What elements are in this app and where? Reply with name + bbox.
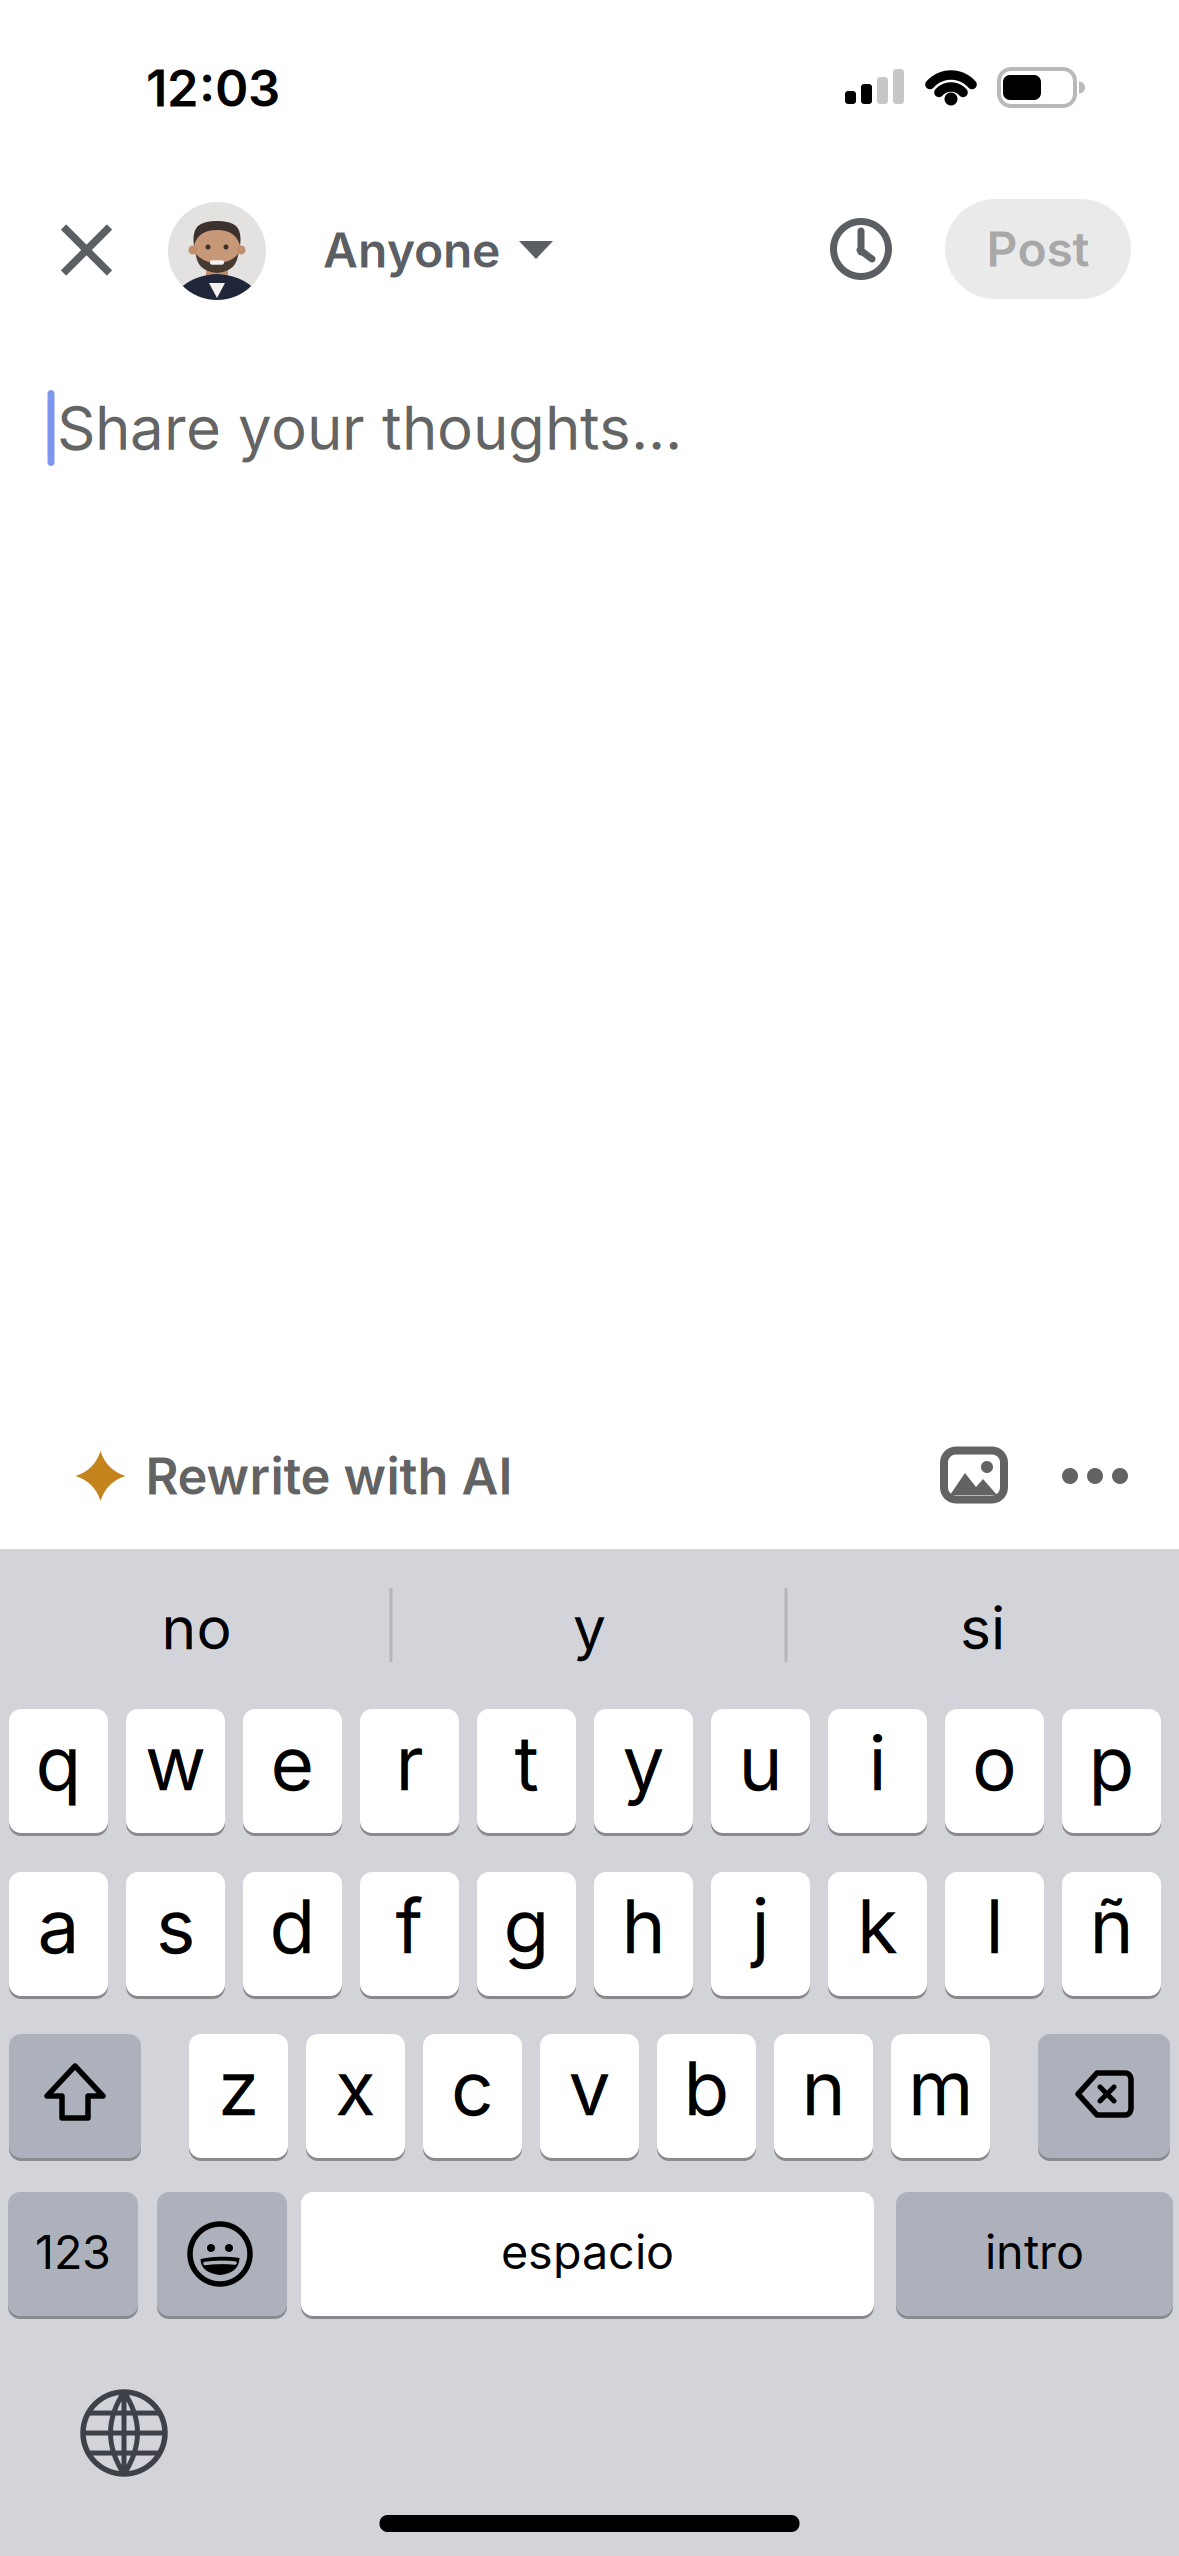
button[interactable]: j [0,0,1179,2556]
button[interactable]: si [0,0,1179,2556]
staticText: intro [985,2224,1084,2280]
staticText: f [395,1881,423,1971]
button[interactable]: d [0,0,1179,2556]
staticText: t [514,1718,538,1808]
button[interactable]: a [0,0,1179,2556]
button[interactable] [0,0,1179,2556]
button[interactable]: espacio [0,0,1179,2556]
staticText: y [573,1592,606,1663]
staticText: n [801,2043,845,2133]
button[interactable] [0,0,1179,2556]
staticText: c [451,2043,494,2133]
button[interactable]: f [0,0,1179,2556]
button[interactable]: Anyone [0,0,1179,2556]
staticText: q [35,1718,81,1808]
staticText: ñ [1089,1881,1133,1971]
button[interactable]: o [0,0,1179,2556]
staticText: o [972,1718,1017,1808]
staticText: p [1088,1718,1134,1808]
staticText: x [335,2043,376,2133]
staticText: w [145,1718,206,1808]
button[interactable]: intro [0,0,1179,2556]
staticText: i [868,1718,886,1808]
staticText: si [960,1592,1005,1663]
button[interactable]: h [0,0,1179,2556]
button[interactable]: ñ [0,0,1179,2556]
button[interactable]: x [0,0,1179,2556]
staticText: Anyone [323,221,500,279]
button[interactable]: s [0,0,1179,2556]
button[interactable] [0,0,1179,2556]
staticText: espacio [501,2224,674,2280]
button[interactable]: w [0,0,1179,2556]
button[interactable]: no [0,0,1179,2556]
button[interactable]: Rewrite with AI [0,0,1179,2556]
staticText: j [751,1881,769,1971]
staticText: b [683,2043,729,2133]
staticText: y [622,1718,664,1808]
button[interactable] [0,0,1179,2556]
staticText: Post [986,220,1089,278]
staticText: d [269,1881,315,1971]
staticText: m [908,2043,973,2133]
button[interactable]: y [0,0,1179,2556]
staticText: a [37,1881,79,1971]
staticText: l [985,1881,1003,1971]
button[interactable] [0,0,1179,2556]
button[interactable]: p [0,0,1179,2556]
button[interactable]: y [0,0,1179,2556]
button[interactable]: l [0,0,1179,2556]
staticText: u [738,1718,782,1808]
staticText: v [568,2043,610,2133]
button[interactable]: t [0,0,1179,2556]
button[interactable]: q [0,0,1179,2556]
staticText: h [621,1881,665,1971]
button[interactable] [0,0,1179,2556]
button[interactable] [0,0,1179,2556]
button[interactable]: n [0,0,1179,2556]
button[interactable]: k [0,0,1179,2556]
button[interactable]: r [0,0,1179,2556]
staticText: r [395,1718,423,1808]
button[interactable]: Post [0,0,1179,2556]
staticText: Rewrite with AI [145,1445,512,1507]
button[interactable]: b [0,0,1179,2556]
button[interactable]: 123 [0,0,1179,2556]
button[interactable]: m [0,0,1179,2556]
button[interactable]: g [0,0,1179,2556]
button[interactable]: c [0,0,1179,2556]
staticText: k [857,1881,898,1971]
button[interactable]: u [0,0,1179,2556]
button[interactable]: z [0,0,1179,2556]
staticText: 12:03 [146,57,280,119]
button[interactable]: v [0,0,1179,2556]
button[interactable]: e [0,0,1179,2556]
staticText: no [161,1592,231,1663]
button[interactable] [0,0,1179,2556]
staticText: g [503,1881,549,1971]
staticText: Share your thoughts... [57,392,682,464]
staticText: e [270,1718,314,1808]
button[interactable] [0,0,1179,2556]
staticText: 123 [35,2224,111,2280]
staticText: s [156,1881,195,1971]
staticText: z [218,2043,259,2133]
button[interactable]: i [0,0,1179,2556]
